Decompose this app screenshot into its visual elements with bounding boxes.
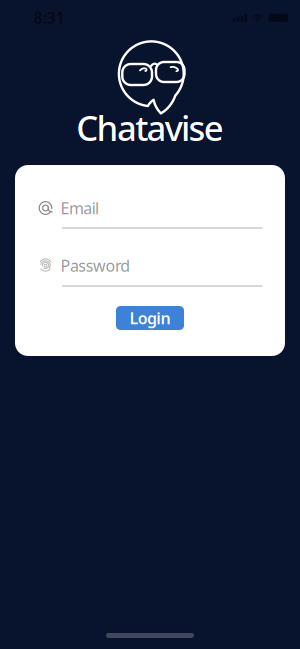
button[interactable]: Login xyxy=(116,306,184,330)
button[interactable]: Email xyxy=(60,195,260,221)
staticText: 8:31 xyxy=(33,7,64,28)
staticText: Chatavise xyxy=(76,104,224,150)
staticText: Login xyxy=(130,307,170,329)
staticText: Password xyxy=(60,255,130,276)
staticText: Email xyxy=(60,197,99,219)
button[interactable]: Password xyxy=(60,252,260,278)
